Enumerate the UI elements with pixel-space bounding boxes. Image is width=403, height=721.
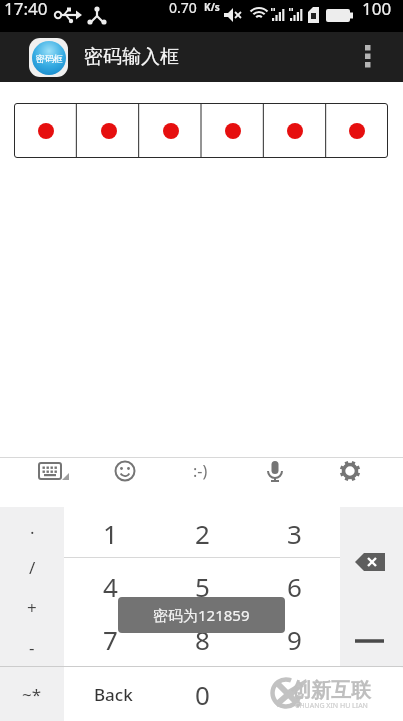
staticText: 17:40 [4,0,48,20]
staticText: 0.70 [169,0,197,17]
button[interactable]: 2 [156,507,248,560]
button[interactable]: 1 [64,507,156,560]
staticText: . [30,516,35,539]
button[interactable] [95,460,155,504]
staticText: 5 [195,569,210,604]
button[interactable] [20,460,80,504]
staticText: 密码为121859 [153,605,250,625]
button[interactable]: 6 [248,560,340,613]
button[interactable] [326,103,388,158]
staticText: - [29,636,35,659]
button[interactable]: 密码框 [0,32,403,82]
staticText: 1 [103,516,118,551]
button[interactable] [202,103,264,158]
button[interactable]: 9 [248,613,340,666]
staticText: CHUANG XIN HU LIAN [295,701,368,711]
staticText: K/s [204,0,220,14]
button[interactable] [352,32,384,82]
button[interactable]: . [0,507,64,547]
button[interactable]: 4 [64,560,156,613]
staticText: 0 [195,677,210,712]
staticText: / [29,556,36,579]
button[interactable]: 密码框 [29,38,68,77]
staticText: 4 [103,569,118,604]
button[interactable] [340,620,403,660]
button[interactable]: 0 [156,667,248,721]
button[interactable] [264,103,326,158]
staticText: + [27,596,37,619]
staticText: 创新互联 [291,678,371,703]
staticText: 3 [287,516,302,551]
staticText: 8 [195,622,210,657]
staticText: 100 [362,0,392,20]
button[interactable]: 8 [156,613,248,666]
button[interactable] [14,103,77,158]
staticText: Back [94,683,133,706]
staticText: 6 [287,569,302,604]
button[interactable]: ~* [0,667,64,721]
button[interactable] [340,530,403,594]
staticText: ~* [22,683,42,706]
staticText: 7 [103,622,118,657]
button[interactable]: 7 [64,613,156,666]
staticText: 密码框 [36,53,63,64]
button[interactable]: 3 [248,507,340,560]
button[interactable]: - [0,627,64,667]
button[interactable] [320,460,380,504]
button[interactable]: Back [64,667,162,721]
button[interactable]: / [0,547,64,587]
button[interactable]: 5 [156,560,248,613]
staticText: 9 [287,622,302,657]
staticText: 密码输入框 [84,45,179,69]
button[interactable] [77,103,140,158]
button[interactable] [140,103,202,158]
button[interactable]: + [0,587,64,627]
button[interactable]: :-) [170,460,230,504]
staticText: :-) [193,460,208,482]
staticText: 2 [195,516,210,551]
button[interactable] [245,460,305,504]
